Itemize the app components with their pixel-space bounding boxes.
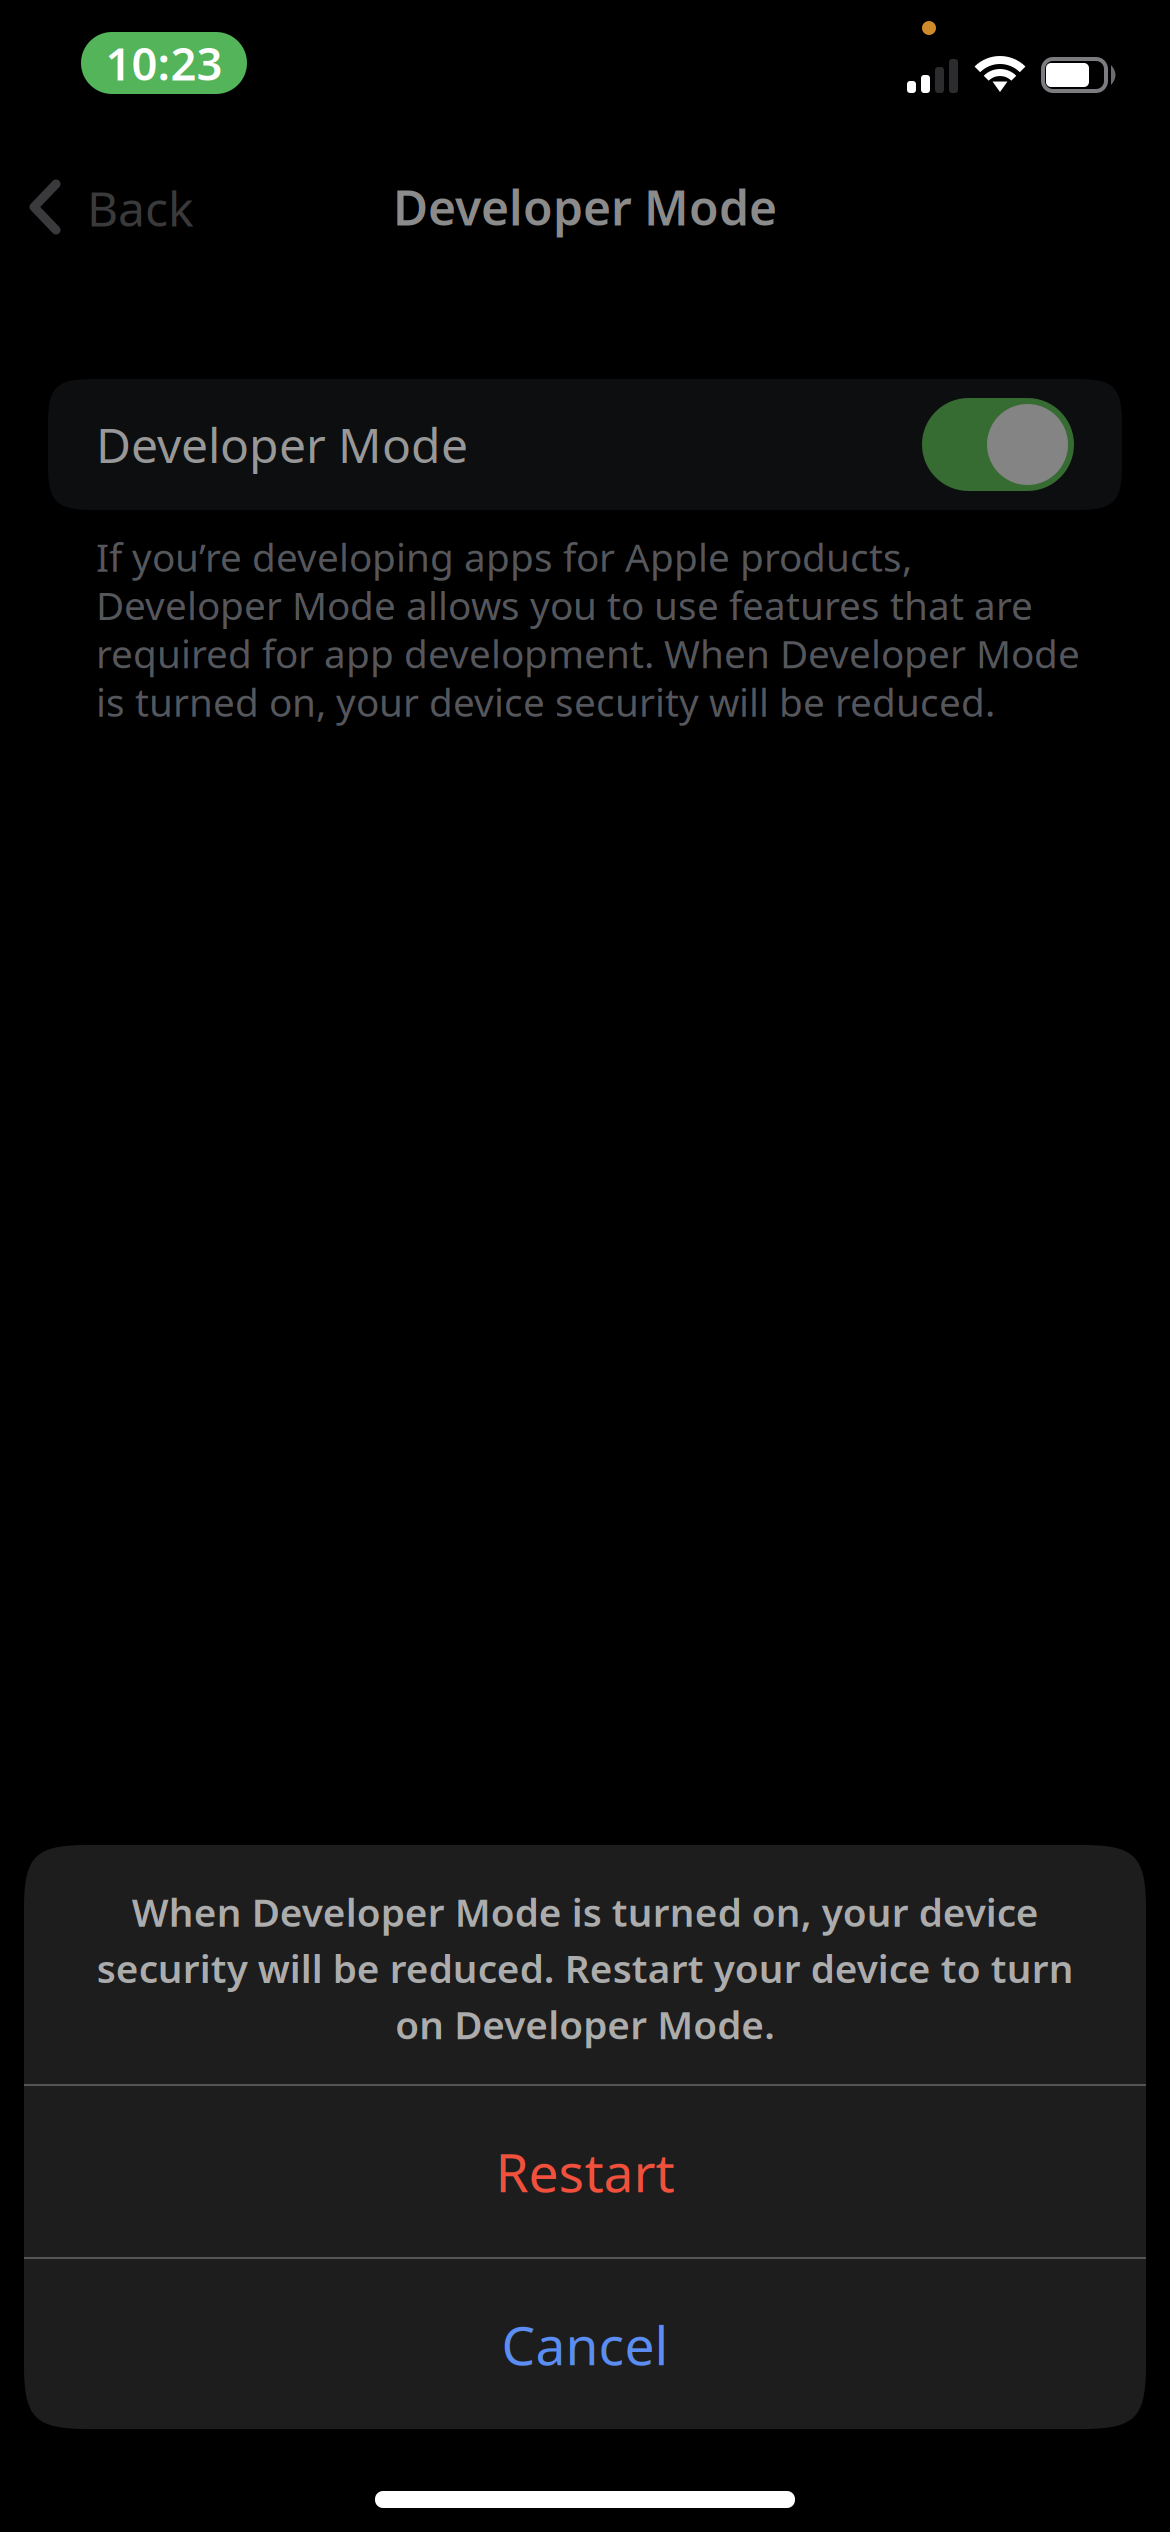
button[interactable]: Developer Mode [48, 379, 1122, 510]
staticText: If you’re developing apps for Apple prod… [96, 531, 1080, 727]
staticText: 10:23 [105, 33, 222, 93]
button[interactable]: Back [0, 144, 218, 270]
staticText: When Developer Mode is turned on, your d… [96, 1886, 1073, 2050]
staticText: Cancel [501, 2309, 668, 2380]
staticText: Developer Mode [393, 175, 777, 239]
button[interactable]: Cancel [24, 2259, 1146, 2430]
staticText: Restart [495, 2136, 674, 2207]
button[interactable]: Restart [24, 2086, 1146, 2257]
staticText: Developer Mode [96, 413, 468, 476]
staticText: Back [87, 176, 194, 240]
button[interactable]: Recording indicator, 10:23 [81, 32, 247, 94]
